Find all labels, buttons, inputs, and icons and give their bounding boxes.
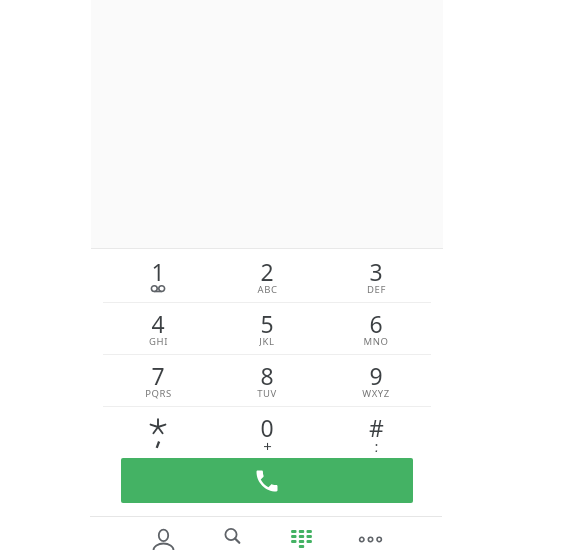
button[interactable] <box>267 517 336 552</box>
button[interactable] <box>198 517 267 552</box>
button[interactable] <box>121 458 413 503</box>
button[interactable]: # <box>321 406 431 458</box>
button[interactable]: 3 <box>321 250 431 302</box>
staticText: 8 <box>260 360 274 390</box>
staticText: ABC <box>257 283 278 295</box>
button[interactable]: 0 <box>212 406 322 458</box>
staticText: 5 <box>260 308 274 338</box>
button[interactable]: 5 <box>212 302 322 354</box>
staticText: TUV <box>257 387 277 399</box>
button[interactable]: 8 <box>212 354 322 406</box>
staticText: 2 <box>260 256 274 286</box>
staticText: 7 <box>151 360 165 390</box>
button[interactable]: 7 <box>103 354 213 406</box>
staticText: # <box>369 412 384 442</box>
staticText: 3 <box>369 256 383 286</box>
button[interactable] <box>336 517 405 552</box>
staticText: GHI <box>149 335 168 347</box>
staticText: DEF <box>367 283 386 295</box>
button[interactable]: 4 <box>103 302 213 354</box>
staticText: JKL <box>259 335 275 347</box>
staticText: 1 <box>151 256 165 286</box>
staticText: WXYZ <box>362 387 390 399</box>
staticText: + <box>263 436 272 452</box>
staticText: MNO <box>363 335 389 347</box>
button[interactable]: 9 <box>321 354 431 406</box>
staticText: PQRS <box>145 387 172 399</box>
staticText: 9 <box>369 360 383 390</box>
staticText: 4 <box>151 308 165 338</box>
staticText: 6 <box>369 308 383 338</box>
button[interactable] <box>103 406 213 458</box>
button[interactable] <box>129 517 198 552</box>
button[interactable]: 6 <box>321 302 431 354</box>
button[interactable]: 1 <box>103 250 213 302</box>
staticText: ; <box>374 436 379 452</box>
button[interactable]: 2 <box>212 250 322 302</box>
staticText: 0 <box>260 412 274 442</box>
